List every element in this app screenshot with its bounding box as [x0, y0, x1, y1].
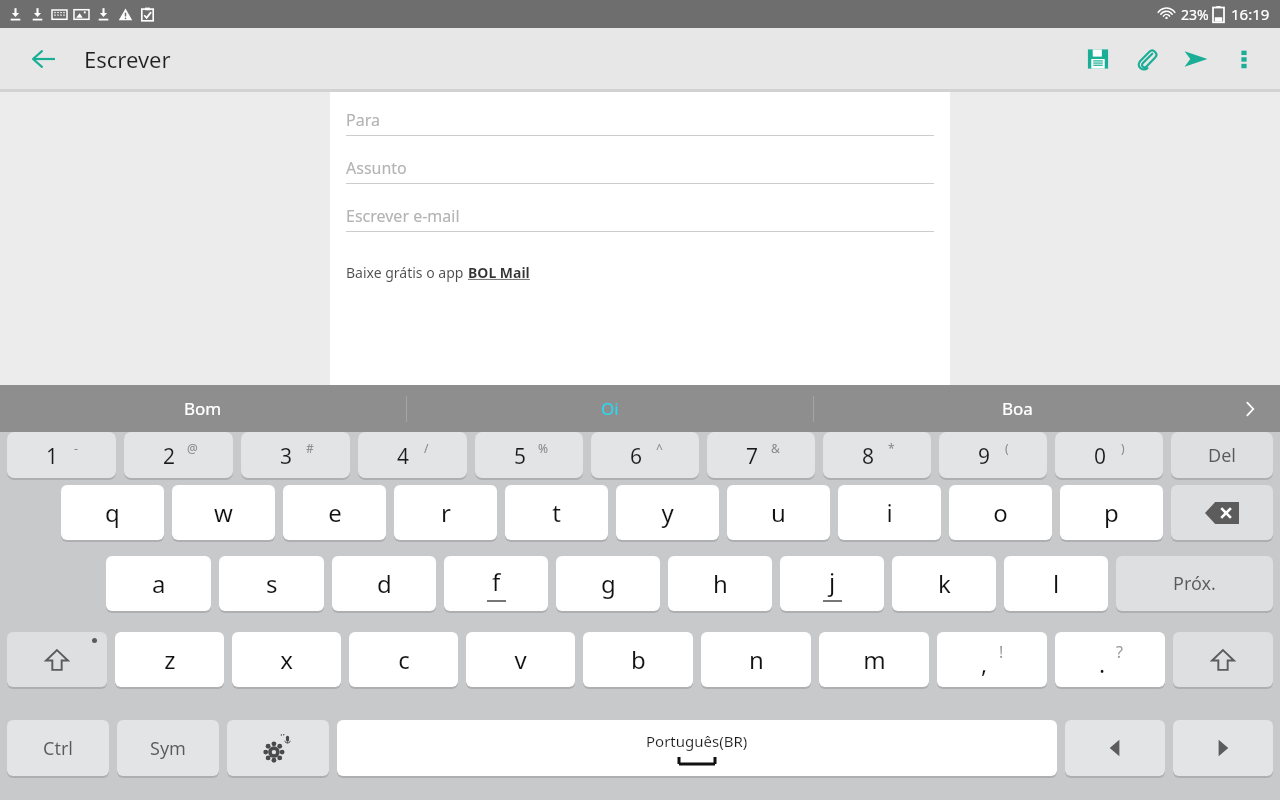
- staticText: s: [266, 567, 278, 600]
- button[interactable]: Assunto: [346, 153, 934, 184]
- button[interactable]: [1173, 720, 1273, 776]
- staticText: 8: [862, 442, 875, 471]
- staticText: ?: [1116, 641, 1123, 663]
- button[interactable]: u: [727, 485, 830, 540]
- button[interactable]: r: [394, 485, 497, 540]
- staticText: z: [164, 643, 176, 676]
- staticText: Para: [346, 109, 380, 131]
- button[interactable]: h: [668, 556, 772, 611]
- button[interactable]: v: [466, 632, 575, 687]
- button[interactable]: Ctrl: [7, 720, 109, 776]
- staticText: m: [863, 643, 886, 676]
- staticText: 2: [163, 442, 176, 471]
- button[interactable]: [1065, 720, 1165, 776]
- staticText: Baixe grátis o app: [346, 263, 468, 282]
- button[interactable]: y: [616, 485, 719, 540]
- staticText: c: [398, 643, 410, 676]
- staticText: !: [999, 641, 1004, 663]
- button[interactable]: z: [115, 632, 224, 687]
- button[interactable]: 0: [1055, 432, 1163, 478]
- staticText: Próx.: [1173, 571, 1216, 596]
- button[interactable]: Oi: [407, 385, 813, 432]
- button[interactable]: [7, 632, 107, 687]
- button[interactable]: 8: [823, 432, 931, 478]
- staticText: f: [492, 565, 501, 598]
- staticText: o: [993, 496, 1008, 529]
- staticText: 9: [978, 442, 991, 471]
- button[interactable]: q: [61, 485, 164, 540]
- button[interactable]: 6: [591, 432, 699, 478]
- staticText: 3: [280, 442, 293, 471]
- staticText: t: [552, 496, 561, 529]
- button[interactable]: Próx.: [1116, 556, 1273, 611]
- button[interactable]: b: [583, 632, 693, 687]
- staticText: i: [886, 496, 893, 529]
- staticText: l: [1053, 567, 1060, 600]
- staticText: p: [1104, 496, 1119, 529]
- staticText: b: [631, 643, 646, 676]
- button[interactable]: Boa: [814, 385, 1220, 432]
- button[interactable]: o: [949, 485, 1052, 540]
- staticText: Sym: [150, 736, 186, 761]
- button[interactable]: BOL Mail: [468, 263, 530, 282]
- staticText: Português(BR): [646, 731, 748, 751]
- button[interactable]: ,: [937, 632, 1047, 687]
- button[interactable]: Bom: [0, 385, 406, 432]
- button[interactable]: m: [819, 632, 929, 687]
- staticText: *: [888, 440, 895, 456]
- button[interactable]: Del: [1171, 432, 1273, 478]
- button[interactable]: d: [332, 556, 436, 611]
- button[interactable]: Voltar: [18, 33, 70, 85]
- button[interactable]: a: [106, 556, 211, 611]
- staticText: w: [214, 496, 233, 529]
- staticText: %: [538, 440, 548, 456]
- button[interactable]: Anexar: [1123, 35, 1171, 83]
- button[interactable]: 5: [475, 432, 583, 478]
- button[interactable]: 4: [358, 432, 467, 478]
- staticText: g: [601, 567, 616, 600]
- staticText: x: [280, 643, 293, 676]
- staticText: 1: [46, 442, 59, 471]
- button[interactable]: 3: [241, 432, 350, 478]
- button[interactable]: [1171, 485, 1273, 540]
- button[interactable]: j: [780, 556, 884, 611]
- button[interactable]: l: [1004, 556, 1108, 611]
- button[interactable]: Português(BR): [337, 720, 1057, 776]
- button[interactable]: x: [232, 632, 341, 687]
- staticText: v: [514, 643, 527, 676]
- button[interactable]: i: [838, 485, 941, 540]
- button[interactable]: Para: [346, 105, 934, 136]
- button[interactable]: Escrever e-mail: [346, 201, 934, 232]
- button[interactable]: Sym: [117, 720, 219, 776]
- staticText: -: [74, 440, 78, 456]
- button[interactable]: f: [444, 556, 548, 611]
- button[interactable]: 9: [939, 432, 1047, 478]
- button[interactable]: t: [505, 485, 608, 540]
- button[interactable]: 7: [707, 432, 815, 478]
- staticText: 6: [630, 442, 643, 471]
- button[interactable]: w: [172, 485, 275, 540]
- button[interactable]: s: [219, 556, 324, 611]
- button[interactable]: k: [892, 556, 996, 611]
- button[interactable]: 2: [124, 432, 233, 478]
- staticText: Assunto: [346, 157, 407, 179]
- button[interactable]: [1173, 632, 1273, 687]
- button[interactable]: [227, 720, 329, 776]
- staticText: (: [1005, 440, 1009, 456]
- button[interactable]: Mais sugestões: [1220, 385, 1280, 432]
- button[interactable]: c: [349, 632, 458, 687]
- staticText: Oi: [601, 397, 619, 420]
- button[interactable]: .: [1055, 632, 1165, 687]
- button[interactable]: n: [701, 632, 811, 687]
- button[interactable]: e: [283, 485, 386, 540]
- button[interactable]: g: [556, 556, 660, 611]
- button[interactable]: 1: [7, 432, 116, 478]
- button[interactable]: Salvar: [1074, 35, 1122, 83]
- button[interactable]: p: [1060, 485, 1163, 540]
- staticText: ^: [656, 440, 663, 456]
- button[interactable]: Mais opções: [1220, 35, 1268, 83]
- staticText: Escrever e-mail: [346, 205, 460, 227]
- staticText: Ctrl: [43, 736, 73, 761]
- staticText: ,: [981, 648, 988, 679]
- button[interactable]: Enviar: [1172, 35, 1220, 83]
